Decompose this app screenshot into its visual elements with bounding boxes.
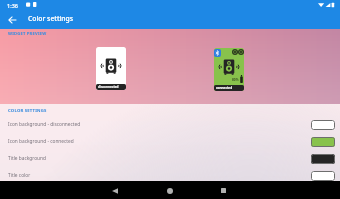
button[interactable]: Refresh [238,49,244,55]
button[interactable]: Navigate up [0,10,25,29]
button[interactable]: Icon background - disconnected [0,116,340,133]
staticText: Icon background - connected [8,138,74,145]
staticText: Icon background - disconnected [8,121,81,128]
staticText: disconnected [98,85,119,89]
staticText: Title background [8,155,46,162]
button[interactable]: Bluetooth [214,49,221,57]
button[interactable]: Bluetooth [214,48,244,91]
staticText: Color settings [28,14,74,23]
button[interactable]: Home [158,183,182,198]
button[interactable]: disconnected [96,47,126,90]
staticText: WIDGET PREVIEW [8,31,47,37]
button[interactable]: Recents [211,183,235,198]
staticText: 80% [232,78,239,82]
button[interactable]: Power [232,49,238,55]
staticText: 1:36 [7,2,18,9]
button[interactable]: Icon background - connected [0,133,340,150]
button[interactable]: Title color [0,167,340,184]
button[interactable]: Title background [0,150,340,167]
staticText: Title color [8,172,31,179]
button[interactable]: Back [103,183,127,198]
staticText: COLOR SETTINGS [8,107,47,113]
staticText: connected [216,86,233,90]
